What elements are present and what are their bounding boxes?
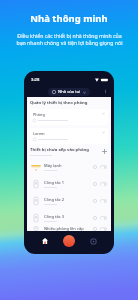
staticText: Công tắc 3 [44, 214, 65, 219]
staticText: Điều khiển các thiết bị nhà thông minh c… [16, 32, 123, 46]
staticText: 3:28 [31, 77, 40, 83]
button[interactable]: More options [102, 88, 109, 95]
button[interactable]: Toggle Nhiều phòng lên cấp [100, 227, 107, 231]
button[interactable]: Toggle Công tắc 1 [100, 182, 107, 186]
button[interactable]: Công tắc 1 [30, 175, 108, 192]
staticText: Thiết bị chưa xếp vào phòng [30, 147, 89, 153]
button[interactable]: Lorem [30, 128, 108, 144]
staticText: Máy lạnh [44, 163, 62, 168]
button[interactable]: Phòng [30, 109, 108, 125]
staticText: Công tắc 2 [44, 197, 65, 202]
button[interactable]: Devices [86, 234, 100, 248]
button[interactable]: Công tắc 3 [30, 209, 108, 226]
button[interactable]: Nhiều phòng lên cấp [30, 226, 108, 231]
staticText: Quản lý thiết bị theo phòng [30, 100, 88, 106]
button[interactable]: Toggle Công tắc 3 [100, 216, 107, 220]
staticText: Nhà thông minh [30, 12, 108, 25]
button[interactable]: Toggle Công tắc 2 [100, 199, 107, 203]
staticText: Công tắc 1 [44, 180, 65, 185]
staticText: Phòng [33, 112, 45, 117]
button[interactable]: Toggle Máy lạnh [100, 165, 107, 169]
staticText: Nhiều phòng lên cấp [44, 226, 84, 231]
staticText: Lorem [33, 131, 45, 136]
button[interactable]: Add device [100, 147, 108, 155]
button[interactable]: Nhà của tui [48, 88, 90, 96]
button[interactable]: Máy lạnh [30, 158, 108, 175]
button[interactable]: Home [38, 234, 52, 248]
button[interactable]: Voice assistant [63, 235, 75, 247]
button[interactable]: Công tắc 2 [30, 192, 108, 209]
staticText: Nhà của tui [58, 89, 81, 95]
